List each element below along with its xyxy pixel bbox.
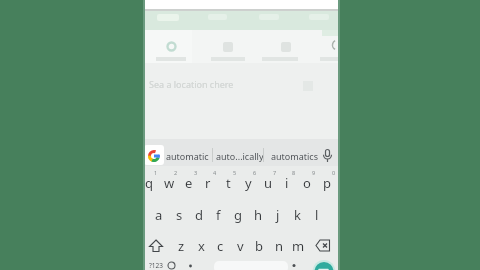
staticText: s — [176, 206, 183, 224]
staticText: i — [285, 174, 289, 192]
button[interactable]: p — [315, 173, 339, 193]
button[interactable]: c — [208, 236, 232, 256]
button[interactable]: x — [189, 236, 213, 256]
button[interactable]: v — [228, 236, 252, 256]
staticText: v — [237, 237, 244, 255]
staticText: a — [155, 206, 163, 224]
staticText: 0 — [332, 169, 336, 176]
button[interactable]: b — [247, 236, 271, 256]
staticText: auto...ically — [216, 150, 264, 162]
button[interactable]: t — [216, 173, 240, 193]
button[interactable]: e — [177, 173, 201, 193]
button[interactable]: Sea a location chere — [149, 77, 234, 91]
staticText: ?123 — [149, 261, 163, 270]
button[interactable]: u — [256, 173, 280, 193]
staticText: z — [178, 237, 185, 255]
staticText: 1 — [154, 169, 158, 176]
button[interactable] — [144, 11, 338, 31]
button[interactable] — [330, 40, 338, 51]
staticText: j — [276, 206, 280, 224]
button[interactable] — [166, 41, 177, 52]
button[interactable]: a — [147, 205, 171, 225]
staticText: 3 — [194, 169, 198, 176]
button[interactable]: f — [206, 205, 230, 225]
staticText: 8 — [292, 169, 296, 176]
staticText: h — [254, 206, 263, 224]
staticText: f — [216, 206, 221, 224]
staticText: n — [275, 237, 284, 255]
button[interactable]: y — [236, 173, 260, 193]
staticText: automatics — [271, 150, 318, 162]
staticText: x — [198, 237, 205, 255]
staticText: 4 — [213, 169, 217, 176]
button[interactable]: n — [267, 236, 291, 256]
button[interactable] — [315, 239, 332, 252]
button[interactable]: z — [169, 236, 193, 256]
button[interactable]: r — [196, 173, 220, 193]
staticText: 2 — [174, 169, 178, 176]
button[interactable]: s — [167, 205, 191, 225]
button[interactable]: h — [246, 205, 270, 225]
staticText: p — [323, 174, 331, 192]
button[interactable]: k — [285, 205, 309, 225]
staticText: l — [315, 206, 319, 224]
button[interactable]: auto...ically — [216, 146, 264, 165]
button[interactable] — [148, 239, 164, 253]
button[interactable]: m — [286, 236, 310, 256]
button[interactable]: q — [137, 173, 161, 193]
button[interactable] — [167, 261, 176, 270]
button[interactable]: ?123 — [147, 260, 164, 270]
button[interactable]: automatic — [166, 146, 209, 165]
staticText: m — [292, 237, 305, 255]
button[interactable]: j — [266, 205, 290, 225]
button[interactable] — [311, 258, 337, 270]
button[interactable]: g — [226, 205, 250, 225]
button[interactable] — [144, 145, 164, 165]
button[interactable]: l — [305, 205, 329, 225]
staticText: d — [195, 206, 203, 224]
button[interactable] — [188, 263, 193, 269]
staticText: 9 — [312, 169, 316, 176]
staticText: r — [205, 174, 211, 192]
button[interactable]: w — [157, 173, 181, 193]
button[interactable]: o — [295, 173, 319, 193]
button[interactable]: i — [275, 173, 299, 193]
staticText: c — [217, 237, 224, 255]
button[interactable] — [322, 149, 333, 163]
staticText: automatic — [166, 150, 209, 162]
staticText: e — [185, 174, 193, 192]
staticText: 5 — [233, 169, 237, 176]
staticText: w — [164, 174, 175, 192]
staticText: k — [294, 206, 301, 224]
staticText: g — [234, 206, 242, 224]
staticText: o — [303, 174, 311, 192]
staticText: y — [245, 174, 252, 192]
staticText: t — [226, 174, 231, 192]
staticText: b — [255, 237, 263, 255]
button[interactable]: d — [187, 205, 211, 225]
staticText: q — [145, 174, 153, 192]
button[interactable]: automatics — [271, 146, 318, 165]
button[interactable] — [291, 262, 297, 269]
staticText: u — [264, 174, 273, 192]
staticText: 6 — [253, 169, 257, 176]
staticText: 7 — [273, 169, 277, 176]
staticText: Sea a location chere — [149, 78, 234, 90]
